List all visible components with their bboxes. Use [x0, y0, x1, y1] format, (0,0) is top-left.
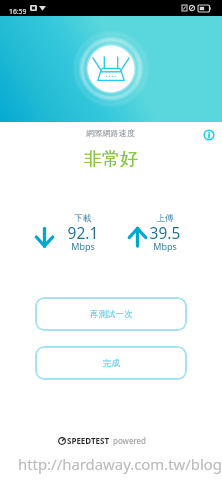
staticText: http://hardaway.com.tw/blog: [18, 454, 222, 474]
staticText: 完成: [103, 358, 120, 369]
button[interactable]: 完成: [35, 346, 187, 380]
button[interactable]: 再測試一次: [35, 297, 187, 331]
staticText: 下載: [53, 213, 113, 224]
staticText: 92.1: [53, 222, 113, 243]
staticText: 非常好: [0, 148, 222, 171]
staticText: 16:59: [9, 7, 27, 16]
staticText: powered: [113, 435, 146, 446]
staticText: Mbps: [135, 240, 195, 252]
staticText: Mbps: [53, 240, 113, 252]
staticText: 再測試一次: [90, 309, 133, 320]
staticText: 上傳: [135, 213, 195, 224]
staticText: 網際網路速度: [86, 128, 136, 138]
button[interactable]: Info: [199, 128, 219, 142]
staticText: 39.5: [135, 222, 195, 243]
staticText: SPEEDTEST: [67, 435, 110, 446]
